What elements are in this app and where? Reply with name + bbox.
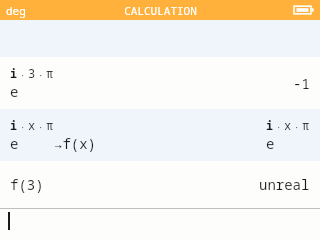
button[interactable]: i [0, 109, 320, 161]
staticText: e [10, 82, 19, 101]
staticText: · [276, 121, 282, 133]
staticText: i [10, 117, 18, 133]
staticText: · [38, 121, 44, 133]
staticText: i [266, 117, 274, 133]
staticText: e [10, 134, 19, 153]
staticText: π [46, 117, 54, 133]
button[interactable]: i [0, 57, 320, 109]
staticText: · [294, 121, 300, 133]
staticText: x [284, 117, 292, 133]
staticText: · [20, 69, 26, 81]
staticText: π [46, 65, 54, 81]
staticText: · [20, 121, 26, 133]
staticText: 3 [28, 65, 36, 81]
button[interactable]: f(3) [0, 161, 320, 208]
staticText: deg [6, 3, 26, 18]
staticText: CALCULATION [124, 3, 197, 18]
staticText: unreal [259, 175, 310, 194]
staticText: →f(x) [54, 134, 96, 153]
staticText: · [38, 69, 44, 81]
staticText: x [28, 117, 36, 133]
other: Battery [294, 4, 314, 16]
staticText: -1 [293, 74, 310, 93]
staticText: f(3) [10, 175, 44, 194]
staticText: e [266, 134, 275, 153]
button[interactable] [0, 209, 320, 240]
staticText: i [10, 65, 18, 81]
staticText: π [302, 117, 310, 133]
